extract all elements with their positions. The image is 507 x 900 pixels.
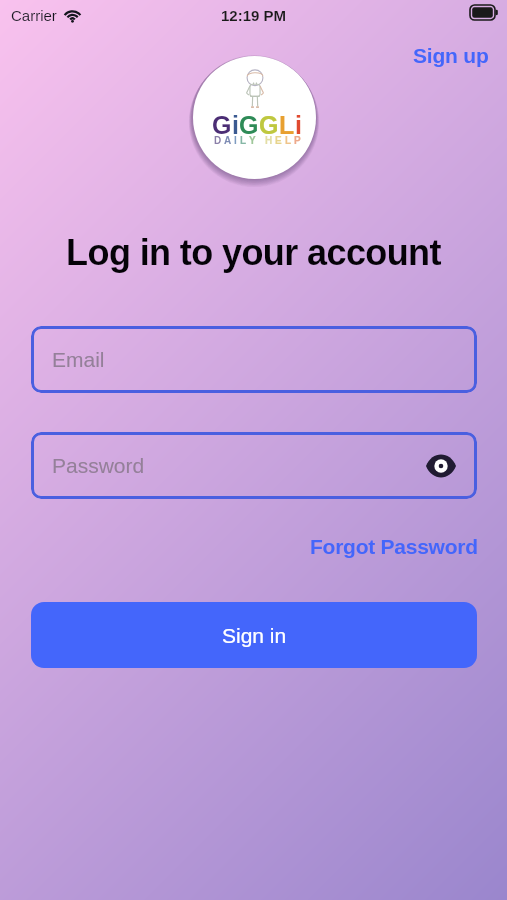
staticText: A	[224, 135, 234, 146]
button[interactable]: Show password	[423, 451, 459, 481]
staticText: i	[232, 111, 239, 139]
staticText: Email	[52, 348, 105, 371]
button[interactable]: Sign up	[403, 38, 499, 73]
staticText: Password	[52, 454, 145, 477]
button[interactable]: Password	[31, 432, 477, 499]
staticText: I	[234, 135, 240, 146]
staticText: Sign up	[413, 44, 489, 67]
staticText: E	[275, 135, 285, 146]
staticText: D	[214, 135, 224, 146]
staticText: P	[294, 135, 304, 146]
staticText: H	[265, 135, 275, 146]
button[interactable]: Sign in	[31, 602, 477, 668]
button[interactable]: Forgot Password	[300, 529, 488, 564]
button[interactable]: Email	[31, 326, 477, 393]
staticText: Forgot Password	[310, 535, 478, 558]
staticText: L	[279, 111, 295, 139]
staticText: Sign in	[222, 624, 287, 647]
staticText: i	[295, 111, 302, 139]
staticText: G	[259, 111, 279, 139]
staticText: 12:19 PM	[221, 7, 287, 24]
staticText: Log in to your account	[0, 232, 507, 272]
staticText: Carrier	[11, 7, 57, 24]
staticText: Y	[249, 135, 259, 146]
staticText: L	[240, 135, 249, 146]
staticText: G	[212, 111, 232, 139]
staticText: G	[239, 111, 259, 139]
staticText: L	[285, 135, 294, 146]
